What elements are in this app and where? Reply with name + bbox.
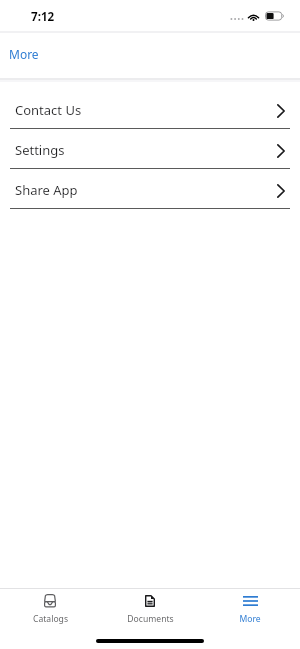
button[interactable]: Catalogs tab	[0, 589, 100, 625]
button[interactable]: Contact Us	[0, 89, 300, 129]
button[interactable]: Settings	[0, 129, 300, 169]
staticText: Documents	[127, 613, 174, 625]
staticText: 7:12	[31, 9, 55, 25]
staticText: Contact Us	[15, 101, 82, 119]
staticText: More	[239, 613, 261, 625]
button[interactable]: Documents tab	[100, 589, 200, 625]
button[interactable]: Share App	[0, 169, 300, 209]
staticText: Settings	[15, 141, 65, 159]
staticText: More	[9, 46, 39, 62]
button[interactable]: More tab	[200, 589, 300, 625]
staticText: Catalogs	[33, 613, 68, 625]
staticText: Share App	[15, 181, 78, 199]
